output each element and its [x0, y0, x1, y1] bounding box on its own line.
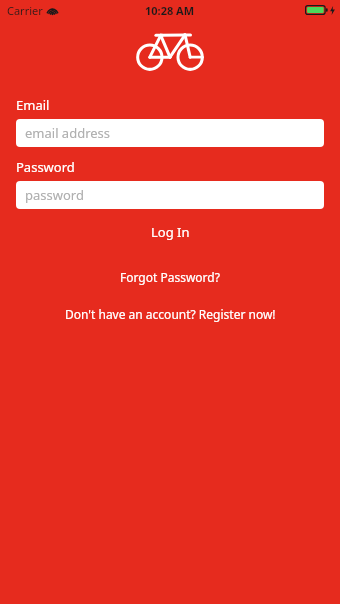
staticText: Password [16, 158, 75, 176]
staticText: Don't have an account? Register now! [65, 306, 276, 322]
staticText: Forgot Password? [120, 269, 220, 285]
button[interactable]: password [16, 181, 324, 209]
button[interactable]: Forgot Password? [0, 266, 340, 288]
staticText: 10:28 AM [145, 3, 195, 18]
other: Bicycle logo [138, 28, 202, 70]
staticText: Carrier [7, 3, 43, 18]
button[interactable]: email address [16, 119, 324, 147]
staticText: Log In [151, 223, 190, 241]
staticText: email address [25, 124, 111, 142]
button[interactable]: Don't have an account? Register now! [0, 303, 340, 325]
button[interactable]: Log In [0, 219, 340, 245]
staticText: Email [16, 96, 50, 114]
staticText: password [25, 186, 84, 204]
